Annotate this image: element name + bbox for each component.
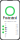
- staticText: Today: [16, 24, 18, 29]
- staticText: Scan: [5, 23, 6, 30]
- staticText: Protected: [3, 16, 17, 20]
- button[interactable]: Backup: [2, 28, 18, 31]
- staticText: Backup: [5, 27, 7, 32]
- staticText: 2h ago: [17, 25, 18, 34]
- staticText: All systems normal: [4, 20, 16, 22]
- button[interactable]: Updates: [2, 31, 18, 34]
- staticText: Current: [16, 30, 18, 35]
- staticText: Updates: [5, 27, 6, 38]
- button[interactable]: Scan: [2, 25, 18, 28]
